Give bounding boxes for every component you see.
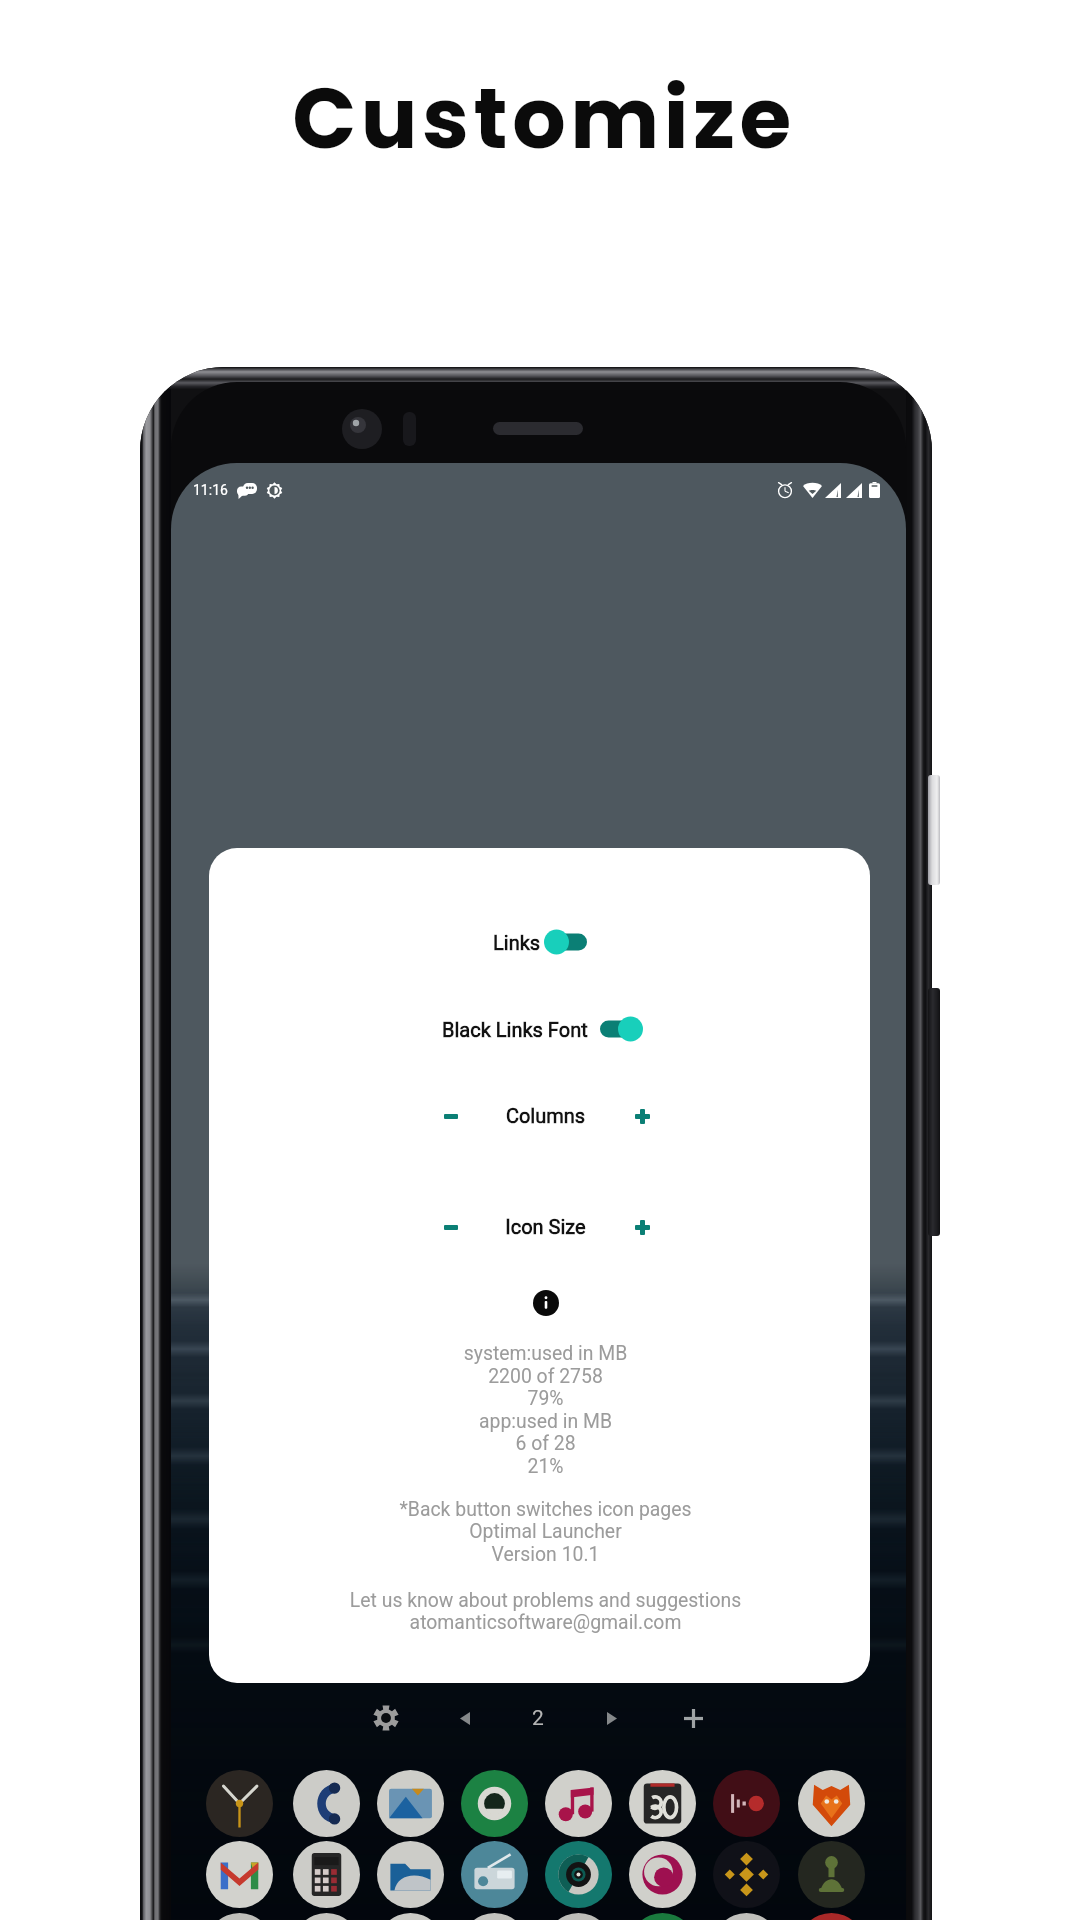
staticText: Let us know about problems and suggestio… (215, 1589, 870, 1612)
staticText: Version 10.1 (215, 1543, 870, 1566)
button[interactable]: App icon (377, 1841, 444, 1908)
staticText: Icon Size (215, 1215, 870, 1238)
button[interactable]: App icon (713, 1913, 780, 1920)
staticText: 6 of 28 (215, 1432, 870, 1455)
button[interactable]: Settings (364, 1696, 408, 1740)
button[interactable]: App icon (461, 1770, 528, 1837)
button[interactable]: App icon (206, 1770, 273, 1837)
staticText: Customize (4, 60, 1080, 178)
button[interactable]: App icon (798, 1841, 865, 1908)
button[interactable]: App icon (545, 1913, 612, 1920)
button[interactable]: App icon (545, 1841, 612, 1908)
button[interactable]: Links (209, 920, 870, 964)
button[interactable]: App icon (293, 1841, 360, 1908)
staticText: Links (493, 931, 541, 954)
button[interactable]: App icon (629, 1913, 696, 1920)
button[interactable]: App icon (629, 1770, 696, 1837)
button[interactable]: App icon (377, 1913, 444, 1920)
button[interactable]: App icon (293, 1913, 360, 1920)
button[interactable]: App icon (545, 1770, 612, 1837)
button[interactable]: App icon (629, 1841, 696, 1908)
staticText: Optimal Launcher (215, 1520, 870, 1543)
staticText: 2200 of 2758 (215, 1365, 870, 1388)
staticText: 21% (215, 1455, 870, 1478)
button[interactable]: App icon (461, 1913, 528, 1920)
button[interactable]: App icon (206, 1913, 273, 1920)
button[interactable]: App icon (798, 1913, 865, 1920)
button[interactable]: App icon (713, 1770, 780, 1837)
staticText: *Back button switches icon pages (215, 1498, 870, 1521)
button[interactable]: App icon (377, 1770, 444, 1837)
button[interactable]: Decrease Columns (429, 1094, 473, 1138)
button[interactable]: App icon (293, 1770, 360, 1837)
button[interactable]: Next page (590, 1696, 634, 1740)
button[interactable]: Increase Icon Size (620, 1205, 664, 1249)
button[interactable]: App icon (713, 1841, 780, 1908)
staticText: 2 (530, 1706, 546, 1731)
button[interactable]: Decrease Icon Size (429, 1205, 473, 1249)
button[interactable]: Add page (671, 1696, 715, 1740)
staticText: app:used in MB (215, 1410, 870, 1433)
staticText: Black Links Font (442, 1018, 588, 1041)
button[interactable]: Previous page (443, 1696, 487, 1740)
button[interactable]: App icon (798, 1770, 865, 1837)
staticText: system:used in MB (215, 1342, 870, 1365)
staticText: atomanticsoftware@gmail.com (215, 1611, 870, 1634)
staticText: 11:16 (193, 482, 228, 498)
staticText: 79% (215, 1387, 870, 1410)
button[interactable]: Increase Columns (620, 1094, 664, 1138)
button[interactable]: App icon (461, 1841, 528, 1908)
button[interactable]: Black Links Font (209, 1007, 870, 1051)
button[interactable]: App icon (206, 1841, 273, 1908)
button[interactable]: Info (533, 1290, 559, 1316)
staticText: Columns (215, 1104, 870, 1127)
